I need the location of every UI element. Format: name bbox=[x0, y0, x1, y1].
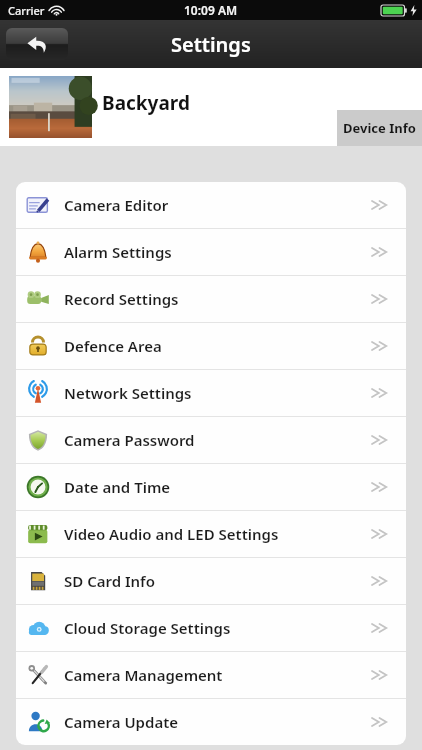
staticText: Record Settings bbox=[64, 289, 371, 309]
staticText: Backyard bbox=[102, 90, 190, 116]
button[interactable]: Defence Area bbox=[16, 323, 406, 369]
staticText: Camera Password bbox=[64, 430, 371, 450]
staticText: Camera Editor bbox=[64, 195, 371, 215]
button[interactable]: Camera Update bbox=[16, 699, 406, 745]
staticText: Alarm Settings bbox=[64, 242, 371, 262]
button[interactable]: Camera Password bbox=[16, 417, 406, 463]
staticText: Network Settings bbox=[64, 383, 371, 403]
button[interactable]: SD Card Info bbox=[16, 558, 406, 604]
staticText: Camera Management bbox=[64, 665, 371, 685]
staticText: Date and Time bbox=[64, 477, 371, 497]
button[interactable]: Video Audio and LED Settings bbox=[16, 511, 406, 557]
button[interactable]: Cloud Storage Settings bbox=[16, 605, 406, 651]
button[interactable]: Record Settings bbox=[16, 276, 406, 322]
staticText: SD Card Info bbox=[64, 571, 371, 591]
button[interactable]: Alarm Settings bbox=[16, 229, 406, 275]
staticText: Device Info bbox=[343, 119, 416, 137]
button[interactable]: Back bbox=[6, 28, 68, 60]
button[interactable]: Device Info bbox=[337, 110, 422, 146]
staticText: Carrier bbox=[8, 3, 45, 18]
button[interactable]: Date and Time bbox=[16, 464, 406, 510]
staticText: Defence Area bbox=[64, 336, 371, 356]
button[interactable]: Camera Management bbox=[16, 652, 406, 698]
staticText: Settings bbox=[171, 31, 251, 58]
button[interactable]: Camera Editor bbox=[16, 182, 406, 228]
staticText: Video Audio and LED Settings bbox=[64, 524, 371, 544]
button[interactable]: Network Settings bbox=[16, 370, 406, 416]
staticText: 10:09 AM bbox=[184, 2, 238, 18]
staticText: Camera Update bbox=[64, 712, 371, 732]
staticText: Cloud Storage Settings bbox=[64, 618, 371, 638]
